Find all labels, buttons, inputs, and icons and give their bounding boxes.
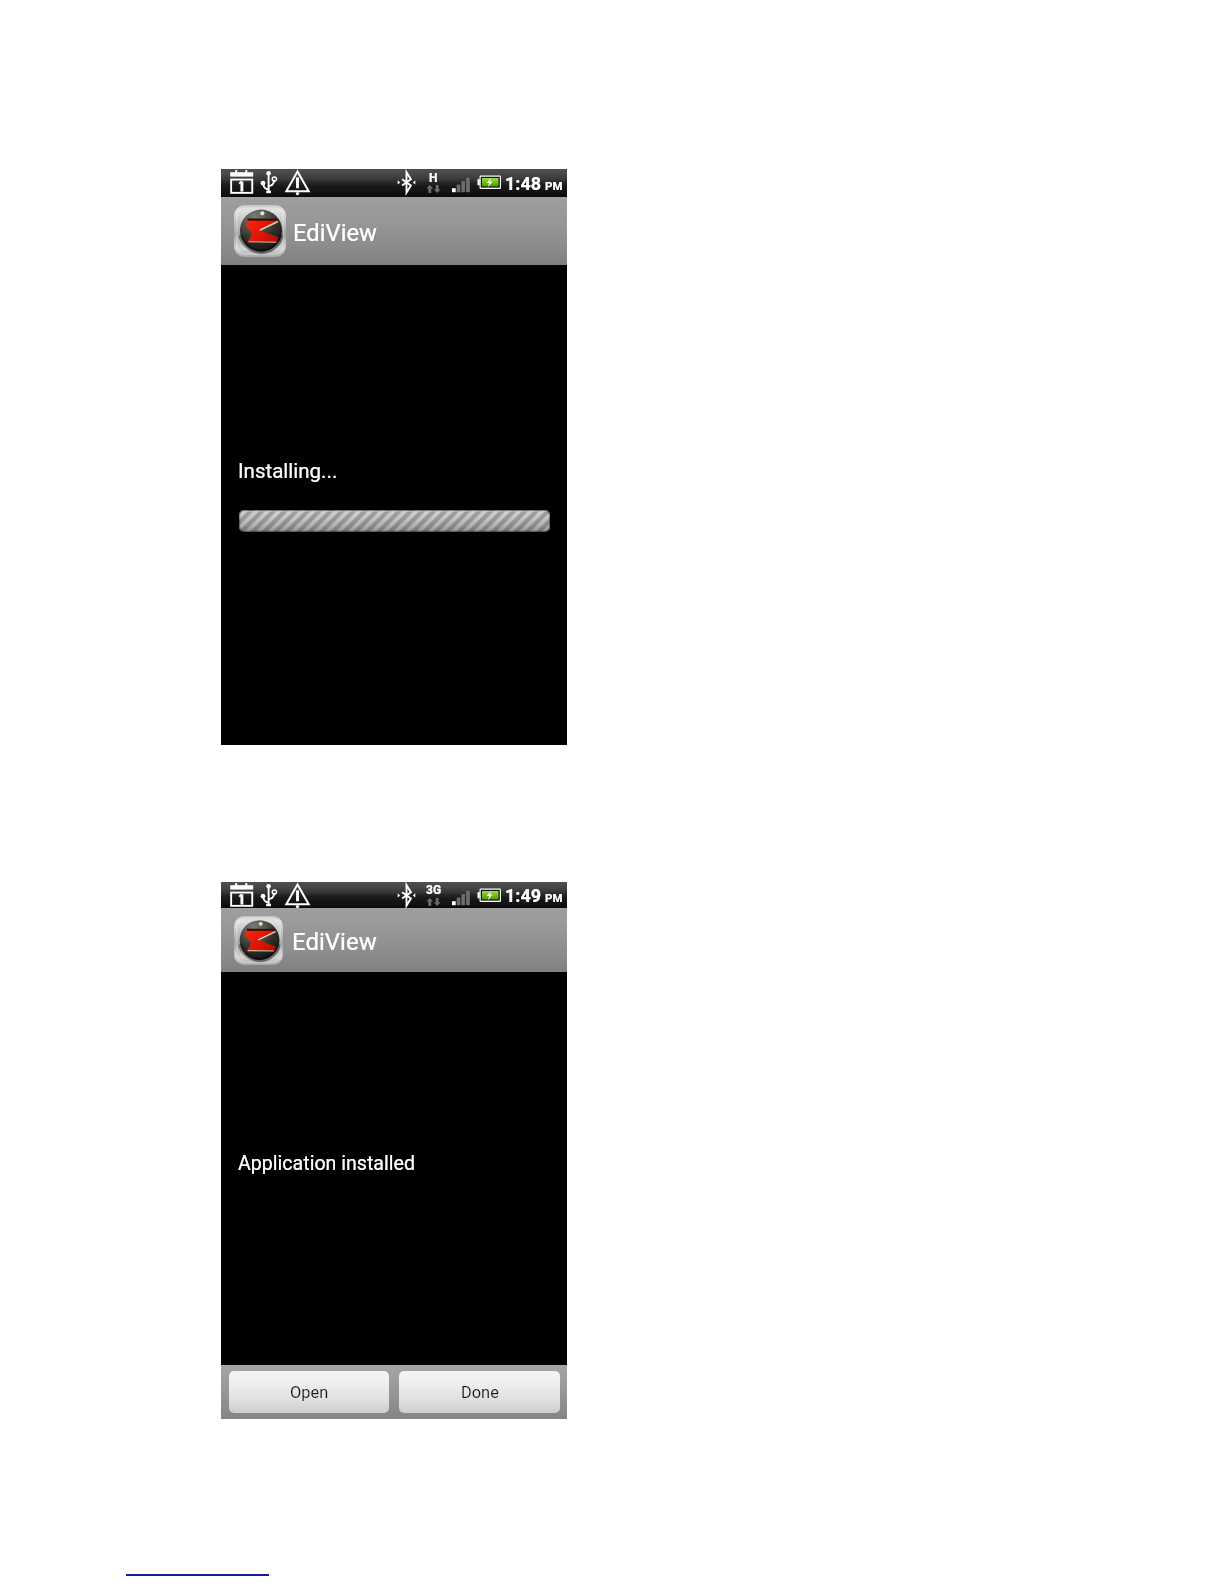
staticText: 3G (426, 883, 442, 897)
button[interactable]: EdiView (221, 908, 567, 972)
button[interactable]: EdiView (221, 197, 567, 265)
staticText: Done (461, 1383, 499, 1402)
staticText: H (429, 171, 438, 185)
button[interactable]: Status bar, notifications (221, 882, 567, 908)
button[interactable]: Status bar, notifications (221, 169, 567, 197)
staticText: Open (290, 1383, 329, 1402)
staticText: Installing... (238, 459, 338, 483)
staticText: PM (545, 179, 563, 192)
staticText: 1:49 (505, 885, 542, 906)
button[interactable]: Open (229, 1371, 389, 1413)
staticText: PM (545, 891, 563, 904)
staticText: EdiView (293, 219, 377, 247)
staticText: 1:48 (505, 173, 542, 194)
button[interactable]: Done (399, 1371, 560, 1413)
staticText: Application installed (238, 1152, 415, 1175)
staticText: EdiView (292, 928, 377, 956)
